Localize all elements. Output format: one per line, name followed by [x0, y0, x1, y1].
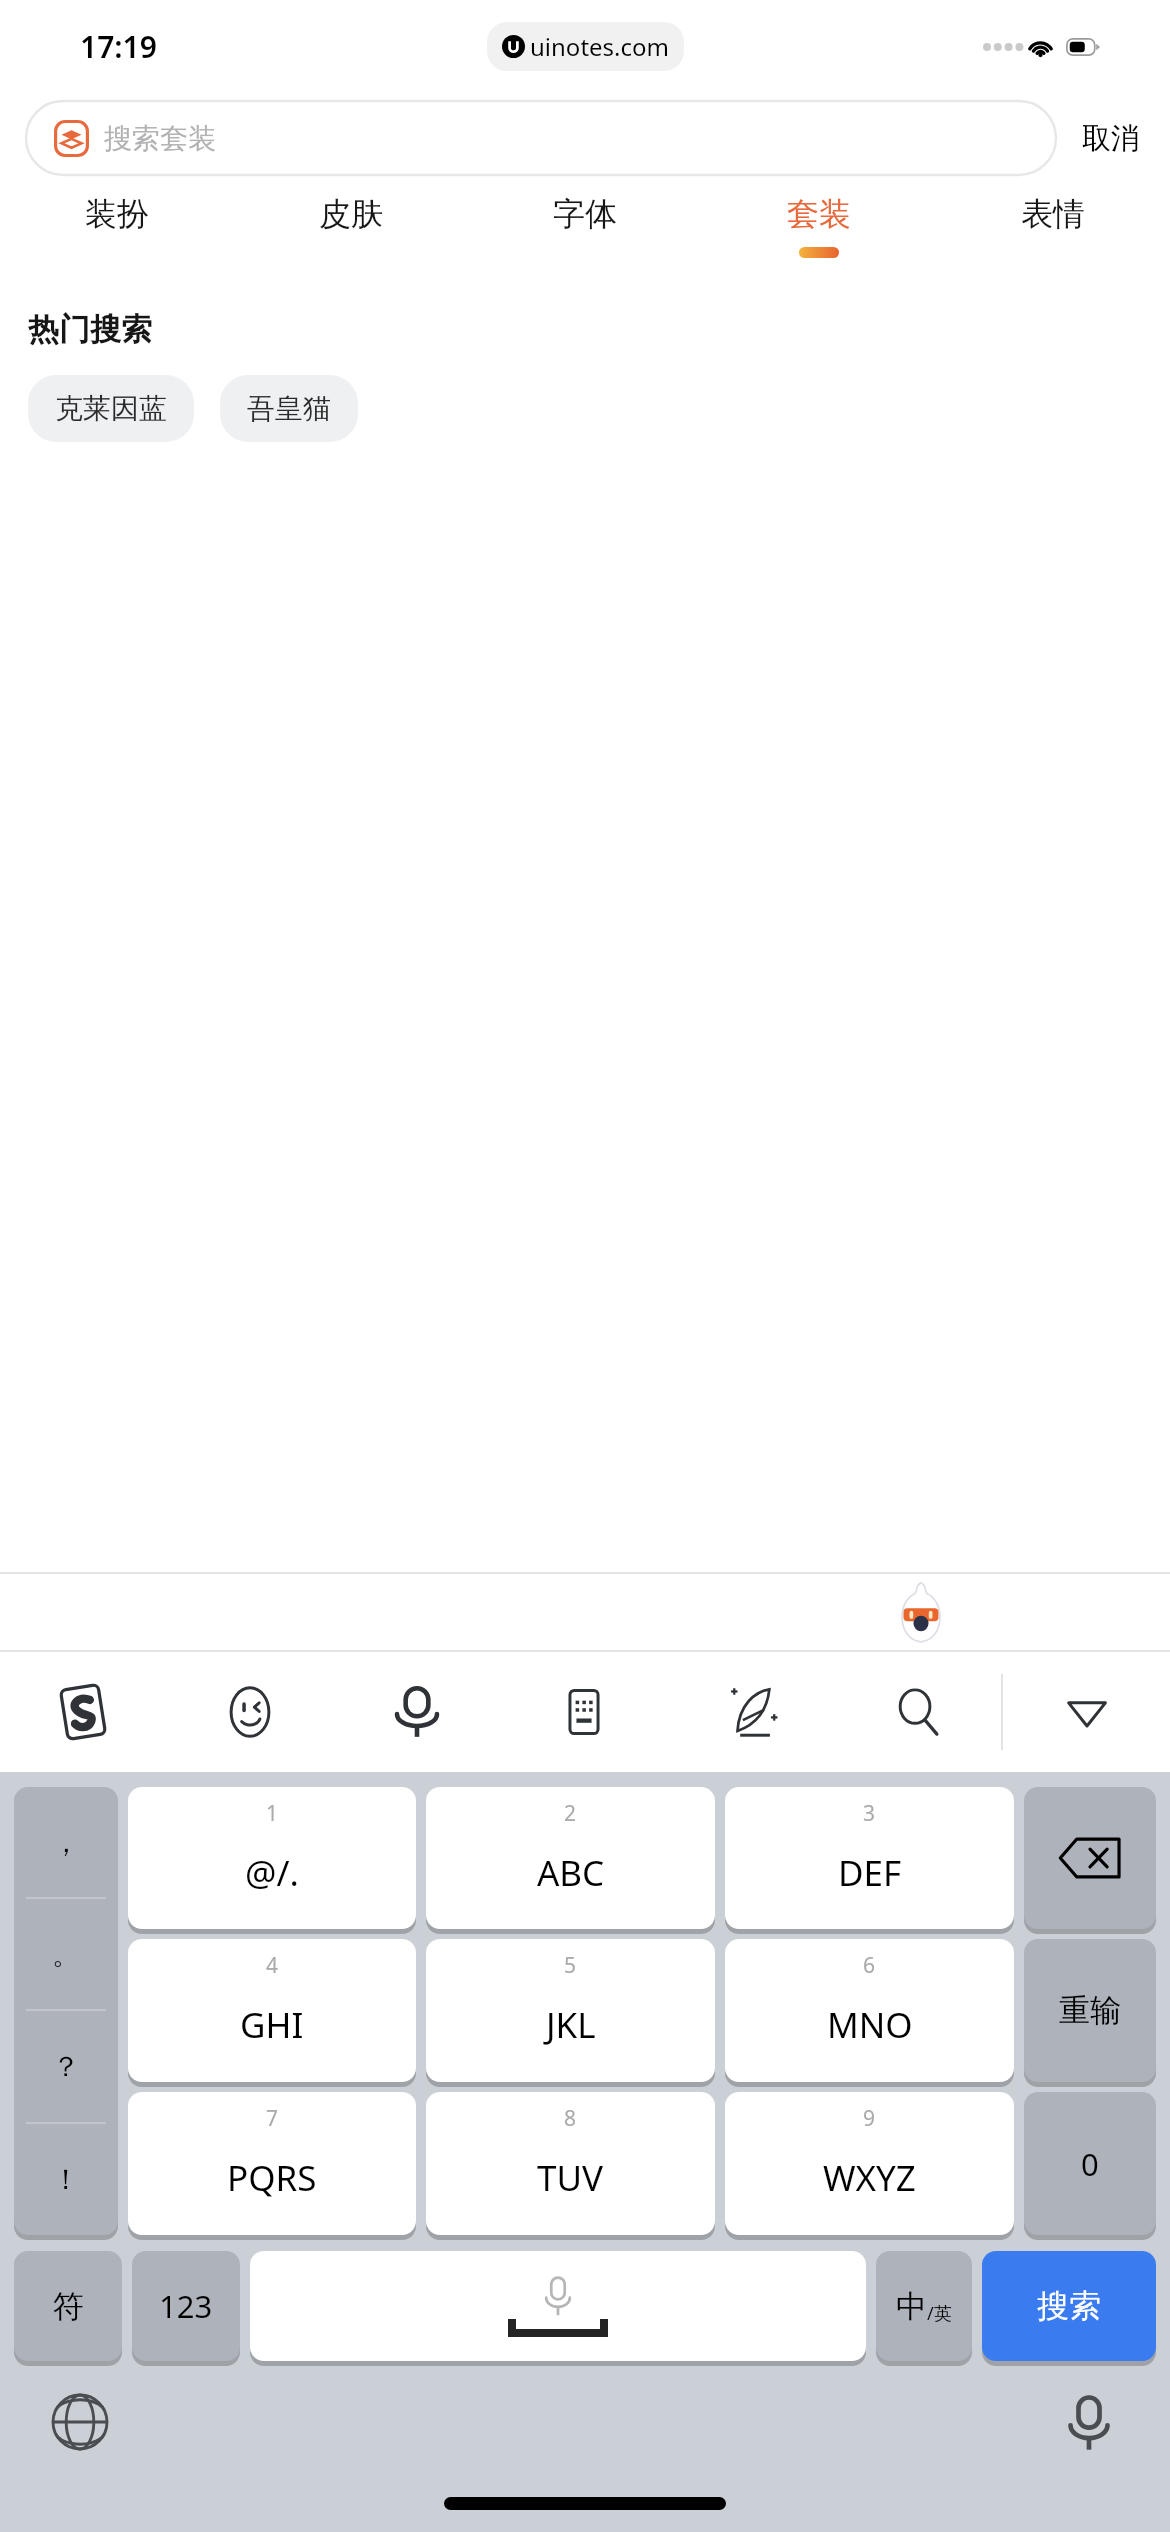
staticText: 装扮 [85, 194, 149, 234]
button[interactable]: 克莱因蓝 [28, 375, 194, 442]
staticText: 克莱因蓝 [55, 391, 167, 426]
button[interactable]: 8 [426, 2092, 715, 2235]
staticText: 123 [159, 2285, 213, 2327]
button[interactable]: 搜索 [982, 2251, 1156, 2361]
staticText: ABC [537, 1849, 605, 1897]
button[interactable]: Delete [1024, 1787, 1156, 1929]
staticText: JKL [546, 2001, 596, 2049]
staticText: @/. [245, 1849, 299, 1897]
button[interactable]: 表情 [936, 184, 1170, 288]
staticText: 吾皇猫 [247, 391, 331, 426]
button[interactable]: Emoji [166, 1652, 333, 1772]
button[interactable]: 重输 [1024, 1939, 1156, 2082]
button[interactable]: ， [14, 1787, 118, 2235]
staticText: 。 [52, 1937, 80, 1972]
staticText: 0 [1081, 2143, 1099, 2185]
staticText: 搜索套装 [104, 121, 216, 156]
button[interactable]: 1 [128, 1787, 416, 1929]
button[interactable]: Voice input [333, 1652, 500, 1772]
staticText: 表情 [1021, 194, 1085, 234]
button[interactable]: Sogou input [0, 1652, 166, 1772]
button[interactable]: 吾皇猫 [220, 375, 358, 442]
other: Delete [1057, 1836, 1123, 1880]
staticText: 9 [863, 2104, 876, 2133]
button[interactable]: 符 [14, 2251, 122, 2361]
staticText: TUV [537, 2154, 604, 2202]
staticText: 7 [266, 2104, 279, 2133]
button[interactable]: 3 [725, 1787, 1014, 1929]
button[interactable]: Keyboard layout [500, 1652, 667, 1772]
other: Dictation [1064, 2394, 1114, 2452]
staticText: 1 [266, 1799, 279, 1828]
staticText: 3 [863, 1799, 876, 1828]
staticText: ， [52, 1825, 80, 1860]
staticText: uinotes.com [530, 30, 669, 63]
staticText: 2 [564, 1799, 577, 1828]
staticText: ！ [52, 2162, 80, 2197]
button[interactable]: 搜索套装 [26, 101, 1056, 175]
button[interactable]: 套装 [702, 184, 936, 288]
staticText: 字体 [553, 194, 617, 234]
button[interactable]: 0 [1024, 2092, 1156, 2235]
staticText: 搜索 [1037, 2286, 1101, 2326]
button[interactable]: Search [834, 1652, 1001, 1772]
staticText: 取消 [1082, 120, 1140, 157]
staticText: /英 [927, 2301, 952, 2326]
button[interactable]: Hide keyboard [1003, 1652, 1170, 1772]
button[interactable]: 5 [426, 1939, 715, 2082]
staticText: 4 [266, 1951, 279, 1980]
staticText: 皮肤 [319, 194, 383, 234]
button[interactable]: 装扮 [0, 184, 234, 288]
staticText: 5 [564, 1951, 577, 1980]
staticText: 符 [53, 2287, 84, 2326]
staticText: 中 [896, 2287, 927, 2326]
staticText: DEF [838, 1849, 902, 1897]
staticText: GHI [240, 2001, 304, 2049]
button[interactable]: 7 [128, 2092, 416, 2235]
button[interactable]: 中 [876, 2251, 972, 2361]
other: Assistant [896, 1581, 946, 1643]
staticText: WXYZ [823, 2154, 916, 2202]
button[interactable]: 4 [128, 1939, 416, 2082]
button[interactable] [250, 2251, 866, 2361]
button[interactable]: Handwriting [667, 1652, 834, 1772]
staticText: 6 [863, 1951, 876, 1980]
other: Switch language [50, 2392, 110, 2452]
staticText: 17:19 [80, 26, 157, 67]
staticText: 热门搜索 [28, 310, 152, 349]
staticText: 套装 [787, 194, 851, 234]
button[interactable]: 123 [132, 2251, 240, 2361]
staticText: 重输 [1059, 1991, 1121, 2030]
staticText: 8 [564, 2104, 577, 2133]
button[interactable]: 字体 [468, 184, 702, 288]
staticText: ？ [52, 2049, 80, 2084]
button[interactable]: 取消 [1056, 112, 1144, 165]
staticText: MNO [827, 2001, 913, 2049]
button[interactable]: 2 [426, 1787, 715, 1929]
button[interactable]: 6 [725, 1939, 1014, 2082]
button[interactable]: 9 [725, 2092, 1014, 2235]
staticText: PQRS [227, 2154, 317, 2202]
button[interactable]: 皮肤 [234, 184, 468, 288]
